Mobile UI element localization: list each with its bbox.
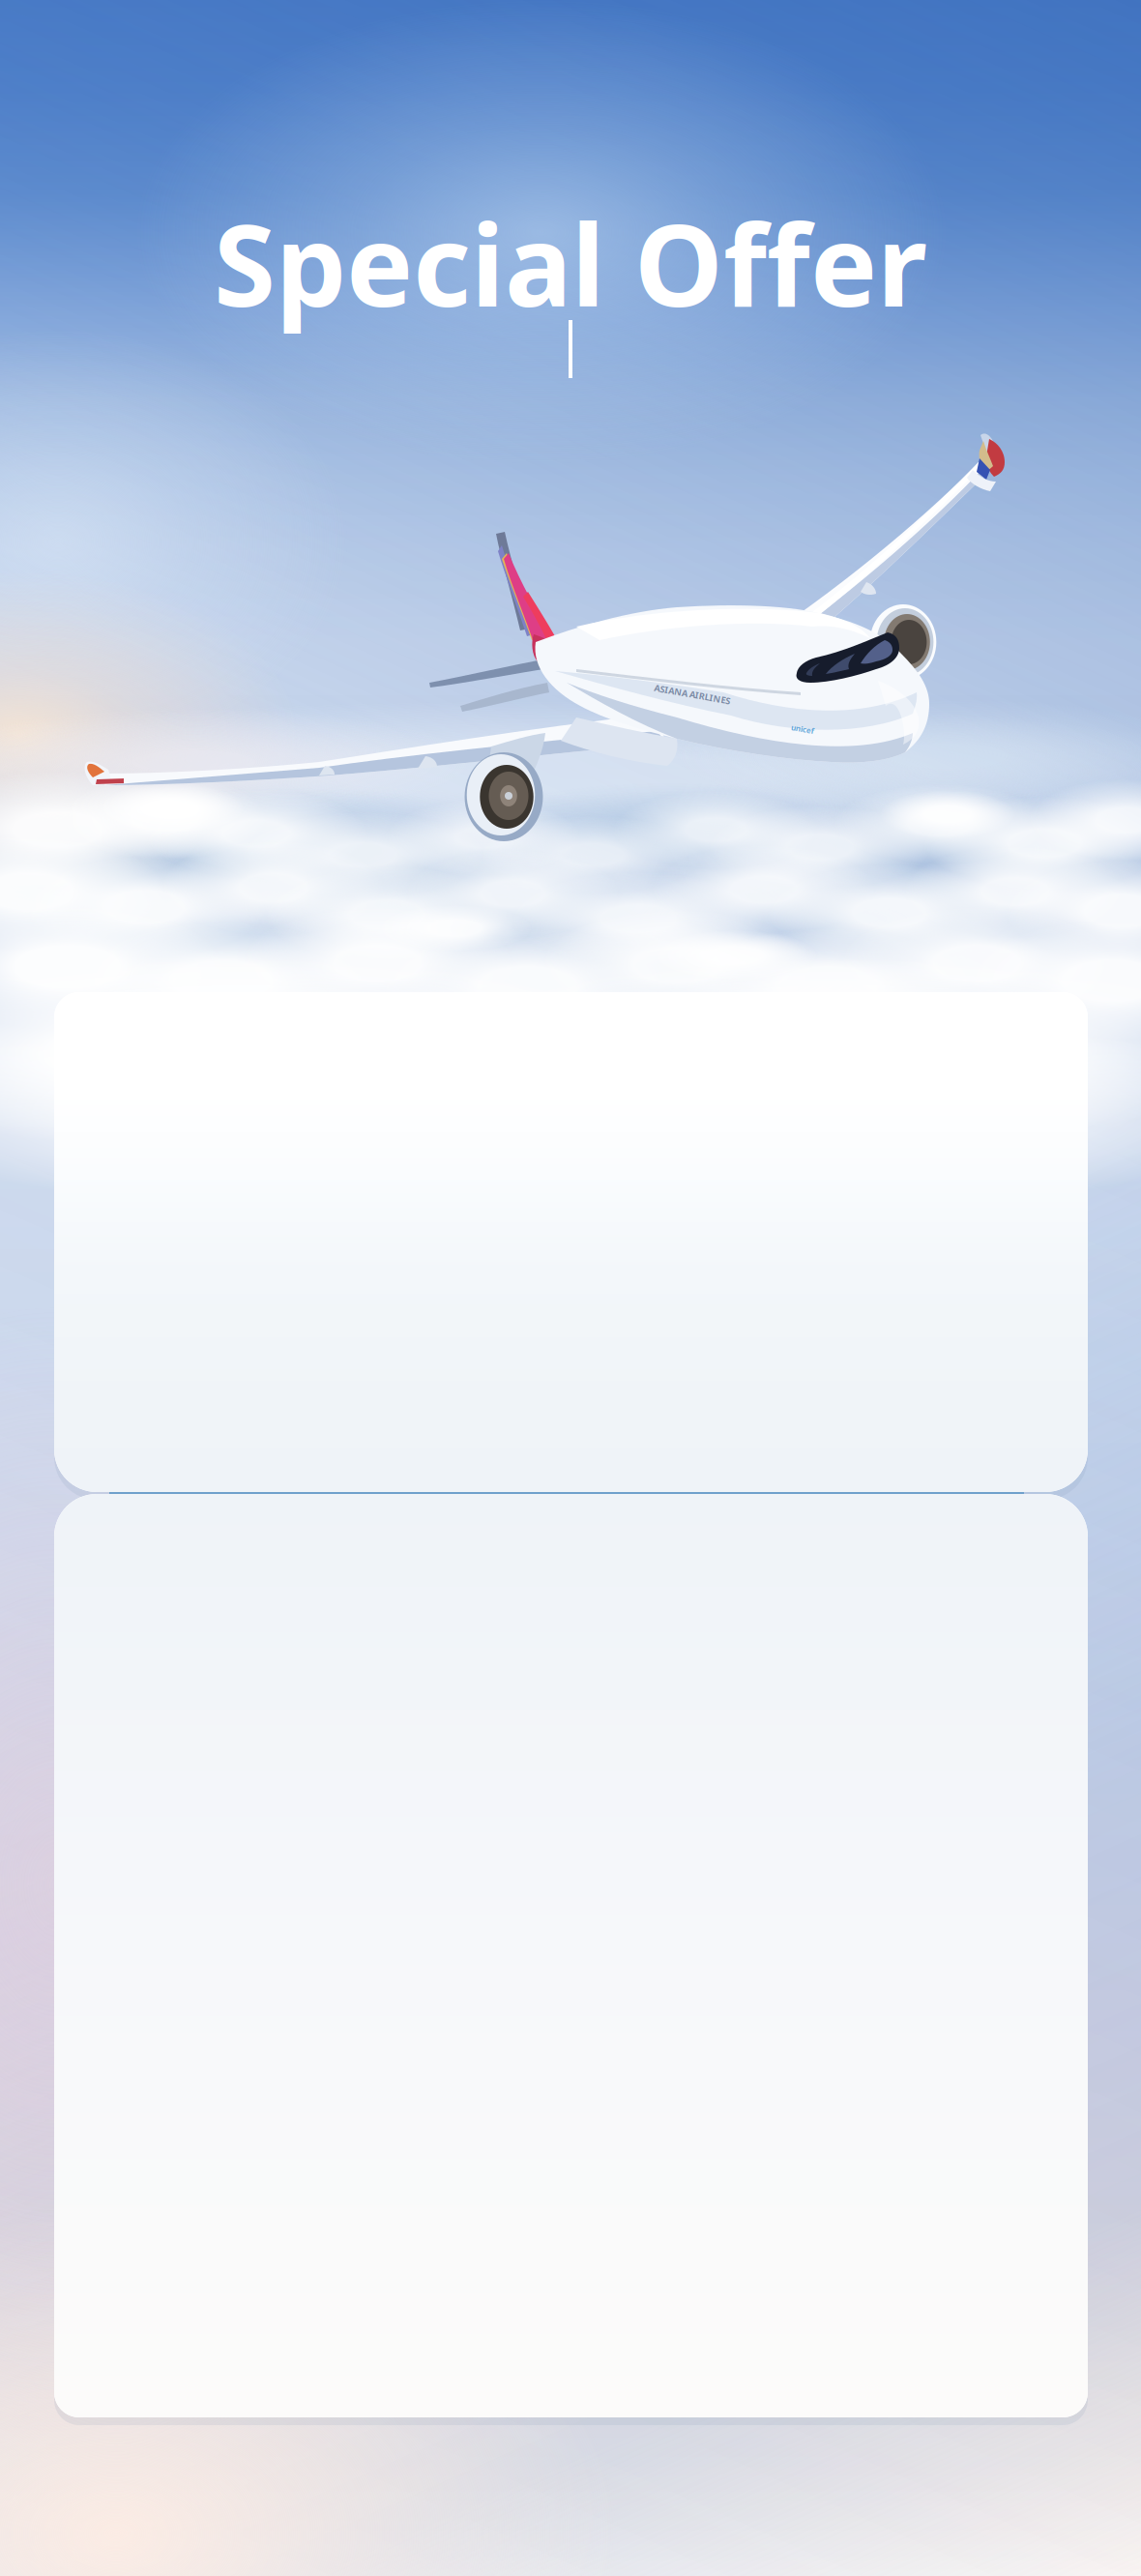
staticText: ASIANA AIRLINES [654, 688, 731, 700]
staticText: unicef [791, 724, 814, 734]
staticText: Special Offer [214, 189, 927, 337]
button[interactable]: Offer details [0, 0, 1141, 2576]
button[interactable]: Offer terms [0, 0, 1141, 2576]
